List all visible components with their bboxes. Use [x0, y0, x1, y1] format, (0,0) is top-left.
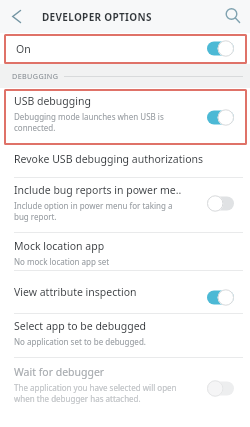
staticText: Include bug reports in power me..: [14, 183, 182, 197]
staticText: DEBUGGING: [12, 71, 59, 81]
staticText: View attribute inspection: [14, 285, 137, 299]
button[interactable]: Mock location app: [0, 233, 250, 270]
button[interactable]: [217, 0, 250, 33]
staticText: Select app to be debugged: [14, 319, 147, 333]
staticText: bug report.: [14, 211, 57, 222]
button[interactable]: Wait for debugger: [0, 358, 250, 410]
staticText: Revoke USB debugging authorizations: [14, 152, 204, 166]
button[interactable]: On: [0, 33, 250, 64]
staticText: connected.: [14, 122, 56, 133]
staticText: No application set to be debugged.: [14, 336, 146, 347]
button[interactable]: Select app to be debugged: [0, 314, 250, 357]
staticText: DEVELOPER OPTIONS: [42, 10, 152, 24]
button[interactable]: USB debugging: [0, 88, 250, 146]
staticText: The application you have selected will o…: [14, 382, 177, 393]
button[interactable]: View attribute inspection: [0, 271, 250, 313]
staticText: No mock location app set: [14, 256, 110, 267]
staticText: Wait for debugger: [14, 365, 105, 379]
staticText: Include option in power menu for taking …: [14, 200, 173, 211]
button[interactable]: [0, 0, 33, 33]
staticText: Mock location app: [14, 239, 105, 253]
staticText: On: [16, 42, 31, 56]
staticText: when the debugger has attached.: [14, 393, 141, 404]
button[interactable]: Revoke USB debugging authorizations: [0, 146, 250, 177]
staticText: Debugging mode launches when USB is: [14, 111, 164, 122]
staticText: USB debugging: [14, 94, 91, 108]
button[interactable]: Include bug reports in power me..: [0, 178, 250, 232]
